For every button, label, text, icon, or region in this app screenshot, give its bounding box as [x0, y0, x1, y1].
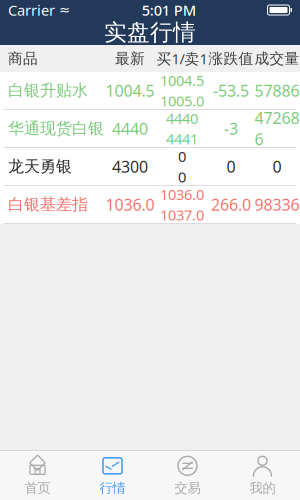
staticText: ≈: [55, 2, 70, 17]
staticText: 0: [226, 156, 235, 177]
staticText: -53.5: [213, 80, 249, 101]
button[interactable]: 白银基差指: [0, 186, 300, 224]
staticText: 成交量: [254, 49, 299, 67]
staticText: 实盘行情: [104, 19, 196, 46]
button[interactable]: 龙天勇银: [0, 148, 300, 186]
staticText: 4300: [112, 156, 148, 177]
staticText: 4441: [166, 129, 198, 148]
staticText: 57886: [254, 80, 299, 101]
staticText: 472686: [254, 107, 299, 150]
staticText: 4440: [166, 108, 198, 128]
staticText: Carrier: [8, 0, 55, 20]
button[interactable]: 首页: [0, 451, 75, 500]
staticText: 首页: [24, 480, 50, 496]
button[interactable]: 我的: [225, 451, 300, 500]
button[interactable]: 白银升贴水: [0, 72, 300, 110]
staticText: 1004.5: [105, 80, 154, 101]
staticText: 4440: [112, 118, 148, 139]
button[interactable]: 交易: [150, 451, 225, 500]
staticText: 涨跌值: [208, 49, 253, 67]
staticText: 最新: [115, 49, 145, 67]
staticText: 1037.0: [160, 205, 204, 224]
staticText: 266.0: [211, 194, 251, 215]
staticText: -3: [224, 118, 238, 139]
button[interactable]: 行情: [75, 451, 150, 500]
staticText: 白银升贴水: [8, 81, 88, 100]
staticText: 交易: [174, 480, 200, 496]
staticText: 1005.0: [160, 91, 204, 110]
staticText: 行情: [99, 480, 125, 496]
staticText: 0: [178, 167, 186, 186]
staticText: 0: [178, 146, 186, 166]
staticText: 98336: [254, 194, 299, 215]
staticText: 商品: [8, 49, 38, 67]
staticText: 0: [272, 156, 281, 177]
staticText: 1036.0: [105, 194, 154, 215]
staticText: 华通现货白银: [8, 119, 104, 138]
staticText: 买1/卖1: [156, 49, 207, 68]
staticText: 白银基差指: [8, 195, 88, 214]
button[interactable]: 华通现货白银: [0, 110, 300, 148]
staticText: 1004.5: [160, 70, 204, 90]
staticText: 龙天勇银: [8, 157, 72, 176]
staticText: 我的: [249, 480, 275, 496]
staticText: 1036.0: [160, 184, 204, 204]
staticText: 5:01 PM: [142, 0, 196, 20]
